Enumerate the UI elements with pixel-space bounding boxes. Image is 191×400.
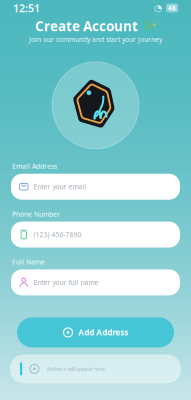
button[interactable]: Enter your email [11, 174, 180, 200]
staticText: Phone Number [12, 210, 60, 219]
button[interactable]: Enter your full name [11, 269, 180, 295]
staticText: Address will appear here [47, 365, 105, 372]
staticText: ◔ [154, 3, 162, 13]
staticText: Email Address [12, 162, 57, 171]
staticText: Create Account [35, 17, 138, 35]
staticText: Add Address [78, 327, 128, 338]
staticText: (123) 456-7890 [33, 230, 81, 239]
staticText: Enter your full name [33, 278, 98, 287]
staticText: Full Name [12, 258, 45, 266]
staticText: 12:51 [13, 1, 40, 15]
staticText: 48 [168, 4, 176, 12]
button[interactable]: Add Address [17, 317, 174, 347]
staticText: Join our community and start your journe… [29, 35, 162, 44]
button[interactable]: (123) 456-7890 [11, 222, 180, 248]
staticText: Enter your email [33, 182, 86, 191]
